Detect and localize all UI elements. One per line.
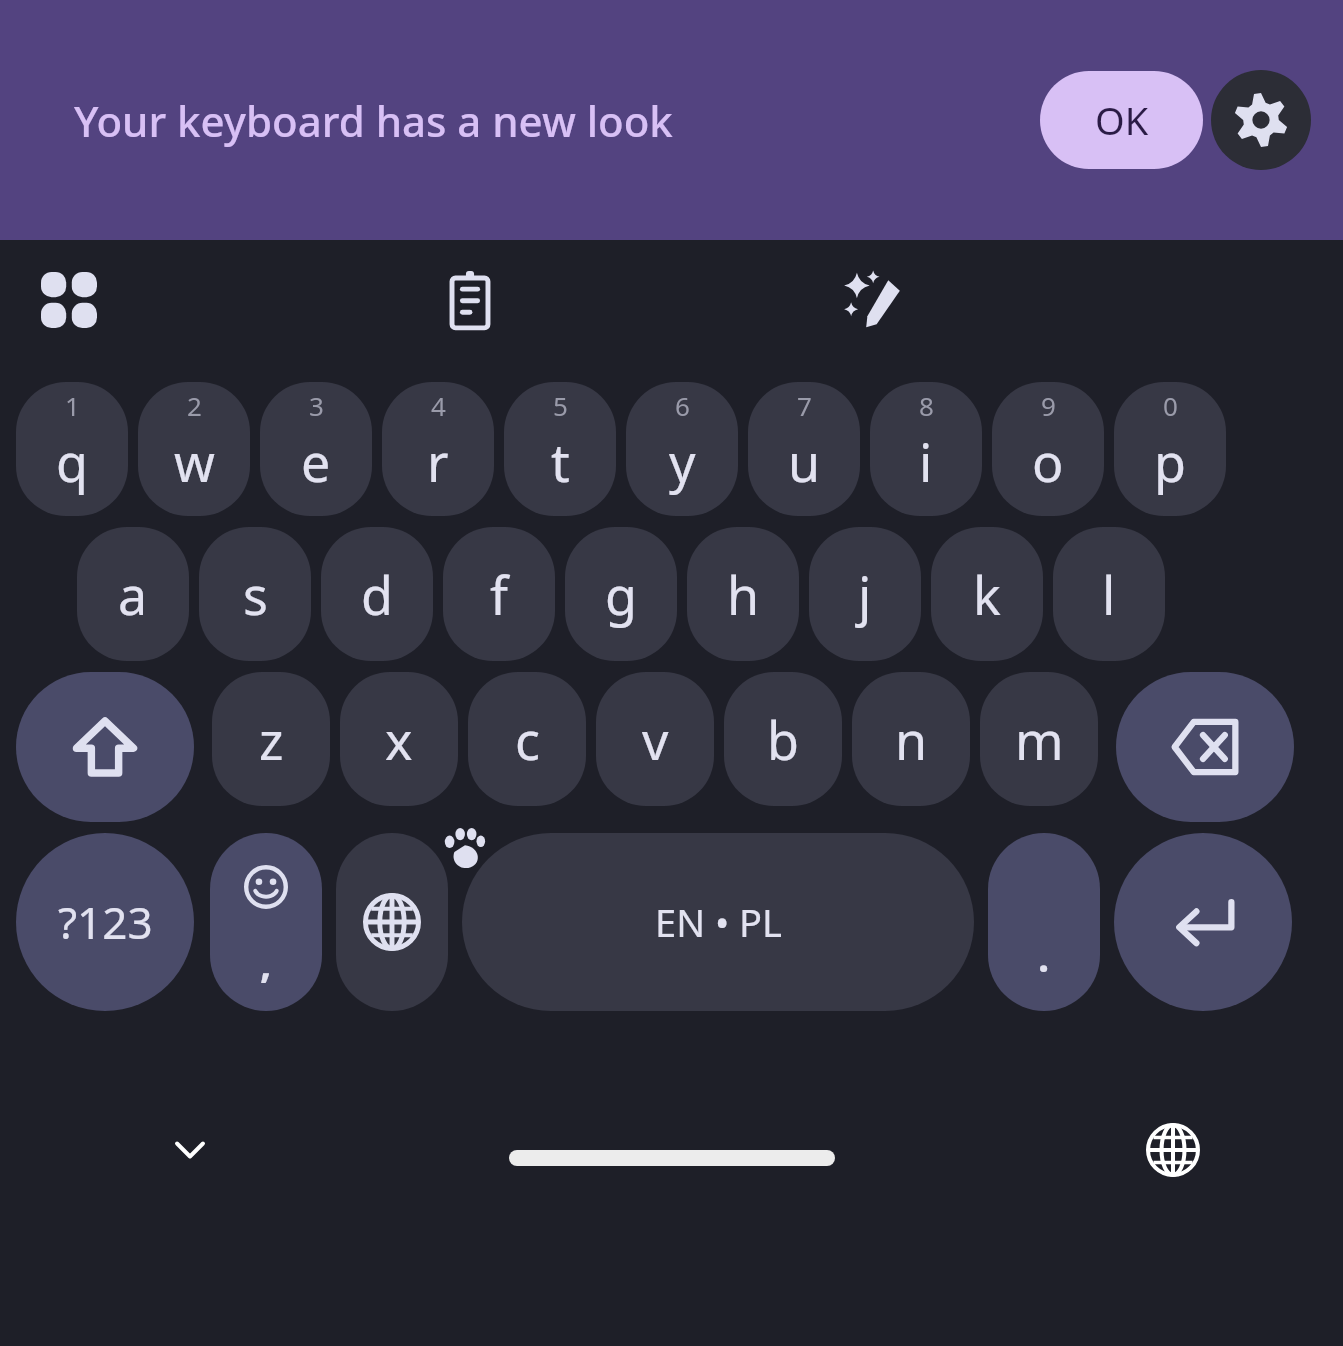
button[interactable]: Settings: [1211, 70, 1311, 170]
button[interactable]: Enter: [1114, 833, 1292, 1011]
staticText: e: [301, 426, 331, 497]
button[interactable]: 0: [1114, 382, 1226, 516]
staticText: v: [642, 704, 669, 775]
staticText: y: [669, 426, 696, 497]
staticText: 8: [919, 388, 934, 423]
staticText: 6: [675, 388, 690, 423]
staticText: z: [259, 704, 284, 775]
button[interactable]: OK: [1040, 71, 1203, 169]
button[interactable]: Change language: [336, 833, 448, 1011]
button[interactable]: 5: [504, 382, 616, 516]
staticText: h: [727, 559, 760, 630]
button[interactable]: 8: [870, 382, 982, 516]
button[interactable]: x: [340, 672, 458, 806]
staticText: 7: [797, 388, 812, 423]
button[interactable]: Toolbar: [22, 253, 116, 347]
button[interactable]: a: [77, 527, 189, 661]
button[interactable]: v: [596, 672, 714, 806]
staticText: .: [1038, 929, 1050, 983]
staticText: f: [490, 559, 508, 630]
staticText: s: [243, 559, 268, 630]
button[interactable]: h: [687, 527, 799, 661]
button[interactable]: Shift: [16, 672, 194, 822]
staticText: j: [858, 559, 872, 630]
button[interactable]: 2: [138, 382, 250, 516]
button[interactable]: z: [212, 672, 330, 806]
button[interactable]: AI edit: [825, 253, 919, 347]
button[interactable]: g: [565, 527, 677, 661]
button[interactable]: Hide keyboard: [150, 1110, 230, 1190]
staticText: i: [919, 426, 933, 497]
button[interactable]: n: [852, 672, 970, 806]
button[interactable]: Switch input method: [1133, 1110, 1213, 1190]
staticText: d: [361, 559, 393, 630]
staticText: r: [427, 426, 449, 497]
staticText: 1: [65, 388, 80, 423]
button[interactable]: Clipboard: [423, 253, 517, 347]
button[interactable]: 4: [382, 382, 494, 516]
button[interactable]: f: [443, 527, 555, 661]
staticText: 4: [431, 388, 446, 423]
staticText: q: [56, 426, 88, 497]
staticText: b: [767, 704, 799, 775]
staticText: n: [895, 704, 928, 775]
staticText: p: [1154, 426, 1186, 497]
button[interactable]: EN • PL: [462, 833, 974, 1011]
button[interactable]: k: [931, 527, 1043, 661]
button[interactable]: 1: [16, 382, 128, 516]
staticText: m: [1015, 704, 1064, 775]
button[interactable]: c: [468, 672, 586, 806]
staticText: Your keyboard has a new look: [74, 92, 673, 149]
staticText: x: [385, 704, 413, 775]
button[interactable]: s: [199, 527, 311, 661]
staticText: 9: [1041, 388, 1056, 423]
button[interactable]: 9: [992, 382, 1104, 516]
staticText: 2: [187, 388, 202, 423]
button[interactable]: m: [980, 672, 1098, 806]
staticText: c: [515, 704, 540, 775]
button[interactable]: 7: [748, 382, 860, 516]
staticText: OK: [1095, 94, 1149, 146]
button[interactable]: b: [724, 672, 842, 806]
button[interactable]: 3: [260, 382, 372, 516]
button[interactable]: d: [321, 527, 433, 661]
staticText: g: [605, 559, 637, 630]
staticText: u: [788, 426, 821, 497]
staticText: w: [174, 426, 215, 497]
button[interactable]: Emoji: [210, 833, 322, 1011]
staticText: a: [118, 559, 148, 630]
staticText: 5: [553, 388, 568, 423]
staticText: 3: [309, 388, 324, 423]
button[interactable]: l: [1053, 527, 1165, 661]
staticText: o: [1032, 426, 1064, 497]
staticText: 0: [1163, 388, 1178, 423]
staticText: k: [973, 559, 1001, 630]
staticText: ?123: [58, 892, 153, 952]
button[interactable]: ?123: [16, 833, 194, 1011]
button[interactable]: 6: [626, 382, 738, 516]
staticText: l: [1102, 559, 1116, 630]
button[interactable]: Backspace: [1116, 672, 1294, 822]
button[interactable]: j: [809, 527, 921, 661]
staticText: EN • PL: [655, 896, 782, 948]
staticText: ,: [260, 935, 272, 989]
staticText: t: [551, 426, 570, 497]
button[interactable]: .: [988, 833, 1100, 1011]
